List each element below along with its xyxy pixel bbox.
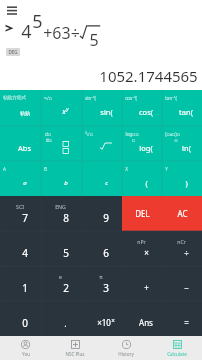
staticText: NSC Plus <box>65 351 85 357</box>
button[interactable]: sin⁻¹( <box>82 90 122 126</box>
staticText: 2 <box>63 281 69 295</box>
staticText: 3 <box>103 281 109 295</box>
button[interactable]: − <box>162 266 202 301</box>
staticText: nPr <box>137 238 146 245</box>
button[interactable]: nPr <box>122 231 162 266</box>
staticText: log▫▫ ▫ <box>125 131 139 143</box>
staticText: 9 <box>103 211 109 225</box>
staticText: − <box>184 282 189 293</box>
button[interactable]: + <box>122 266 162 301</box>
button[interactable]: 0 <box>0 301 41 336</box>
staticText: 6 <box>103 246 109 260</box>
staticText: cos( <box>139 107 153 117</box>
staticText: B <box>44 166 47 172</box>
staticText: ÷ <box>184 247 189 258</box>
staticText: ln( <box>182 143 191 153</box>
button[interactable]: c <box>82 161 122 196</box>
staticText: ⁿ√▫ <box>44 95 52 101</box>
staticText: c <box>105 179 108 187</box>
staticText: 4 <box>21 19 32 44</box>
staticText: y <box>66 106 69 113</box>
staticText: 5 <box>63 246 69 260</box>
staticText: Y <box>165 166 168 172</box>
staticText: 4 <box>22 246 28 260</box>
staticText: 8 <box>63 211 69 225</box>
staticText: 5 <box>32 9 43 34</box>
button[interactable]: X <box>122 161 162 196</box>
staticText: log( <box>139 143 153 153</box>
staticText: 0 <box>22 316 28 330</box>
staticText: sin( <box>100 107 113 117</box>
staticText: x <box>62 106 66 116</box>
button[interactable]: Y <box>162 161 202 196</box>
button[interactable]: NSC Plus <box>50 336 100 360</box>
staticText: 粘贴 <box>20 110 30 116</box>
button[interactable]: Menu <box>3 2 20 18</box>
staticText: 1052.1744565 <box>99 66 198 86</box>
staticText: a <box>23 179 27 187</box>
staticText: Abs <box>18 143 31 153</box>
button[interactable]: 6 <box>82 231 122 266</box>
button[interactable]: ³√▫ <box>82 126 122 161</box>
staticText: 7 <box>22 211 28 225</box>
button[interactable]: 5 <box>41 231 82 266</box>
button[interactable]: Calculate <box>151 336 202 360</box>
staticText: π <box>99 273 103 280</box>
button[interactable]: Ans <box>122 301 162 336</box>
button[interactable]: cos⁻¹( <box>122 90 162 126</box>
button[interactable]: AC <box>162 196 202 231</box>
button[interactable]: ⁿ√▫ <box>41 90 82 126</box>
staticText: tan⁻¹( <box>165 95 177 101</box>
button[interactable]: You <box>0 336 50 360</box>
button[interactable]: . <box>41 301 82 336</box>
button[interactable]: ENG <box>41 196 82 231</box>
staticText: Ans <box>139 317 153 328</box>
staticText: X <box>125 166 128 172</box>
staticText: ( <box>145 178 148 188</box>
staticText: ³√▫ <box>85 131 93 137</box>
button[interactable]: 粘贴方程式 <box>0 90 41 126</box>
button[interactable]: tan⁻¹( <box>162 90 202 126</box>
staticText: DEG <box>8 49 18 55</box>
staticText: = <box>184 317 189 328</box>
staticText: × <box>144 247 149 258</box>
button[interactable]: A <box>0 161 41 196</box>
staticText: ×10 <box>97 317 111 328</box>
staticText: ENG <box>55 203 66 210</box>
button[interactable]: Abs <box>0 126 41 161</box>
button[interactable]: log▫▫ ▫ <box>122 126 162 161</box>
staticText: A <box>3 166 6 172</box>
staticText: tan( <box>179 107 193 117</box>
button[interactable]: 1 <box>0 266 41 301</box>
button[interactable]: B <box>41 161 82 196</box>
button[interactable]: π <box>82 266 122 301</box>
staticText: ) <box>185 178 188 188</box>
staticText: You <box>22 351 30 357</box>
button[interactable]: History <box>100 336 151 360</box>
staticText: e <box>59 273 62 280</box>
button[interactable]: 9 <box>82 196 122 231</box>
staticText: SCI <box>16 203 24 210</box>
button[interactable]: DEL <box>122 196 162 231</box>
staticText: d▫ d▫ <box>44 131 52 143</box>
staticText: History <box>118 351 134 357</box>
staticText: b <box>64 179 68 187</box>
button[interactable]: = <box>162 301 202 336</box>
button[interactable]: nCr <box>162 231 202 266</box>
staticText: +63÷ <box>43 22 80 44</box>
button[interactable]: DEG <box>8 49 18 55</box>
button[interactable]: e <box>41 266 82 301</box>
button[interactable]: SCI <box>0 196 41 231</box>
staticText: + <box>144 282 149 293</box>
button[interactable]: d▫ d▫ <box>41 126 82 161</box>
staticText: Calculate <box>167 351 187 357</box>
button[interactable]: ×10 <box>82 301 122 336</box>
button[interactable]: 4 <box>0 231 41 266</box>
button[interactable]: (▫±▫)▫ ▫ <box>162 126 202 161</box>
staticText: 1 <box>22 281 28 295</box>
staticText: cos⁻¹( <box>125 95 137 101</box>
staticText: sin⁻¹( <box>85 95 96 101</box>
staticText: x <box>111 316 115 324</box>
staticText: nCr <box>177 238 186 245</box>
staticText: 粘贴方程式 <box>3 95 26 101</box>
